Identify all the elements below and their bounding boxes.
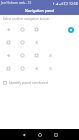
button[interactable]: Navigation icon option [15,49,29,62]
button[interactable]: Navigation icon option [1,62,15,75]
button[interactable]: Identify panel combined [0,78,79,87]
button[interactable]: Navigation icon option [29,36,43,49]
button[interactable]: Navigation icon option [1,36,15,49]
button[interactable]: Recent apps [48,129,64,140]
button[interactable]: Navigation icon option [15,62,29,75]
button[interactable]: Navigation icon option [29,62,43,75]
button[interactable]: Navigation icon option [15,36,29,49]
staticText: Jan Hobson web...15 [1,1,32,5]
button[interactable]: Home [32,129,48,140]
button[interactable]: Selected navigation button [68,27,74,33]
staticText: 12:58 [69,1,78,6]
staticText: Navigation panel [25,8,55,13]
button[interactable]: Navigation icon option [1,49,15,62]
staticText: Select another navigation button [3,17,50,21]
staticText: Identify panel combined [9,80,48,85]
button[interactable]: Navigation icon option [43,62,57,75]
button[interactable]: Navigation icon option [29,49,43,62]
button[interactable]: Navigation icon option [43,49,57,62]
button[interactable]: Navigation icon option [15,23,29,36]
button[interactable]: Navigation icon option [29,23,43,36]
button[interactable]: Navigation icon option [1,23,15,36]
button[interactable]: Back [16,129,32,140]
